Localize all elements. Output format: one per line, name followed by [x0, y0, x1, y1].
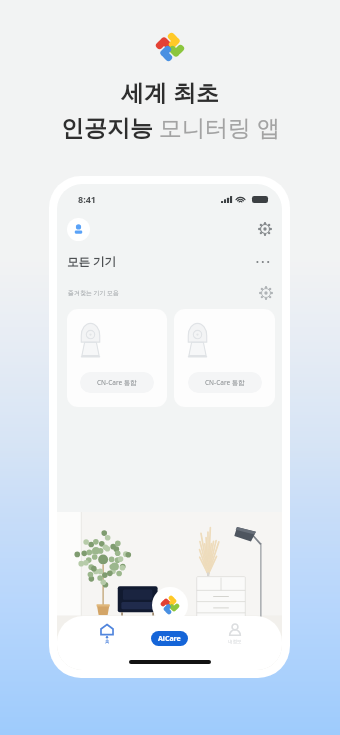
staticText: 모니터링 앱 [159, 111, 280, 142]
button[interactable]: Settings [255, 219, 275, 239]
staticText: 8:41 [78, 193, 96, 205]
staticText: CN-Care 통합 [205, 378, 245, 387]
button[interactable]: 홈 [95, 623, 119, 645]
staticText: 홈 [105, 639, 110, 645]
button[interactable]: 내정보 [223, 623, 247, 645]
button[interactable]: CN-Care 통합 [174, 309, 275, 407]
staticText: AiCare [158, 634, 181, 644]
button[interactable]: Profile [67, 218, 90, 241]
button[interactable]: AiCare home [152, 587, 188, 623]
staticText: 즐겨찾는 기기 모음 [68, 289, 120, 297]
button[interactable]: Device settings [257, 284, 275, 302]
staticText: CN-Care 통합 [97, 378, 137, 387]
staticText: 내정보 [228, 639, 242, 645]
staticText: 세계 최초 [121, 76, 219, 107]
staticText: 모든 기기 [67, 254, 116, 270]
button[interactable]: AiCare [151, 631, 188, 646]
button[interactable]: CN-Care 통합 [67, 309, 167, 407]
staticText: 인공지능 [61, 111, 159, 142]
button[interactable]: More options [254, 253, 272, 271]
